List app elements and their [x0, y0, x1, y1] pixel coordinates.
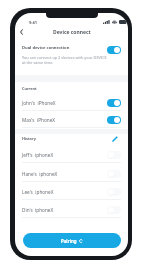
staticText: Device connect: [53, 29, 91, 36]
button[interactable]: Lee's iphoneX: [15, 184, 128, 199]
button[interactable]: Switch off: [107, 151, 121, 159]
staticText: Jeff's iphoneX: [22, 152, 54, 158]
button[interactable]: Edit: [109, 133, 120, 144]
button[interactable]: Switch on: [107, 46, 121, 54]
staticText: History: [22, 136, 36, 141]
button[interactable]: Max's iPhoneX: [15, 112, 128, 127]
staticText: Pairing: [61, 238, 77, 244]
button[interactable]: Switch on: [107, 116, 121, 124]
staticText: You can connect up 2 devices with your D…: [22, 55, 107, 65]
button[interactable]: Back: [15, 26, 27, 38]
button[interactable]: Switch off: [107, 170, 121, 178]
staticText: Hane's iphoneX: [22, 171, 58, 177]
button[interactable]: John's iPhoneX: [15, 95, 128, 110]
staticText: 9:41: [29, 20, 37, 25]
staticText: Max's iPhoneX: [22, 117, 56, 123]
button[interactable]: Switch off: [107, 188, 121, 196]
button[interactable]: Din's iphoneX: [15, 202, 128, 217]
staticText: Lee's iphoneX: [22, 189, 54, 195]
staticText: Dual device connection: [22, 45, 70, 51]
button[interactable]: Switch off: [107, 206, 121, 214]
staticText: Din's iphoneX: [22, 207, 54, 213]
staticText: John's iPhoneX: [22, 100, 56, 106]
button[interactable]: Hane's iphoneX: [15, 166, 128, 181]
button[interactable]: Switch on: [107, 99, 121, 107]
button[interactable]: Pairing: [23, 233, 121, 248]
button[interactable]: Jeff's iphoneX: [15, 147, 128, 162]
staticText: Current: [22, 86, 37, 91]
